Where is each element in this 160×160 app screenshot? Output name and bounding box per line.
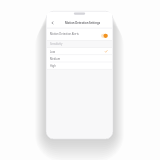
- button[interactable]: Motion Detection Alerts: [47, 28, 112, 40]
- staticText: Low: [50, 50, 55, 54]
- button[interactable]: Medium: [47, 55, 112, 62]
- button[interactable]: Low: [47, 48, 112, 55]
- button[interactable]: High: [47, 62, 112, 69]
- staticText: Medium: [50, 57, 61, 61]
- staticText: Motion Detection Alerts: [50, 32, 79, 36]
- staticText: Motion Detection Settings: [65, 21, 101, 25]
- button[interactable]: Back: [47, 17, 57, 28]
- staticText: High: [50, 64, 56, 68]
- staticText: Sensitivity: [50, 42, 63, 46]
